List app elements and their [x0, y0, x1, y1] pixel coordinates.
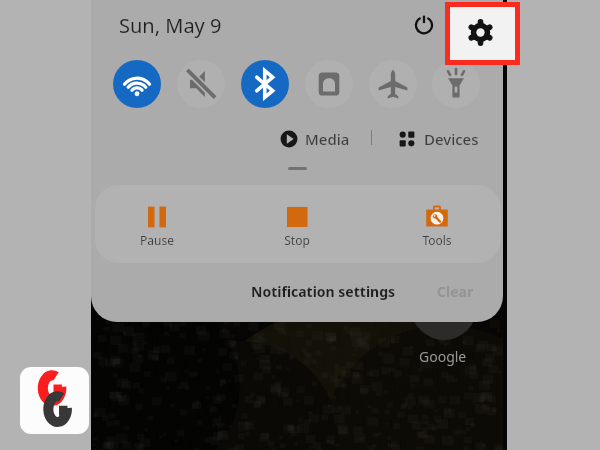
staticText: Pause	[140, 232, 174, 248]
button[interactable]: Stop	[257, 204, 337, 248]
staticText: Sun, May 9	[119, 12, 222, 39]
button[interactable]: Media	[280, 129, 350, 149]
button[interactable]: Settings	[467, 19, 494, 46]
button[interactable]: Tools	[397, 204, 477, 248]
button[interactable]: Power	[412, 13, 436, 37]
staticText: Media	[305, 129, 350, 149]
staticText: Notification settings	[251, 282, 396, 301]
staticText: Devices	[424, 129, 479, 149]
button[interactable]: Wi-Fi	[113, 60, 161, 108]
staticText: Google	[419, 347, 467, 366]
button[interactable]: Flashlight	[432, 60, 480, 108]
staticText: Tools	[422, 232, 452, 248]
button[interactable]: Notification settings	[251, 282, 396, 301]
button[interactable]: Pause	[117, 204, 197, 248]
button[interactable]: Devices	[398, 129, 479, 149]
button[interactable]: Auto rotate	[305, 60, 353, 108]
button[interactable]: Clear	[437, 282, 474, 301]
button[interactable]: Bluetooth	[241, 60, 289, 108]
button[interactable]: Sound off	[177, 60, 225, 108]
staticText: Clear	[437, 282, 474, 301]
button[interactable]: Airplane mode	[369, 60, 417, 108]
staticText: Stop	[284, 232, 310, 248]
